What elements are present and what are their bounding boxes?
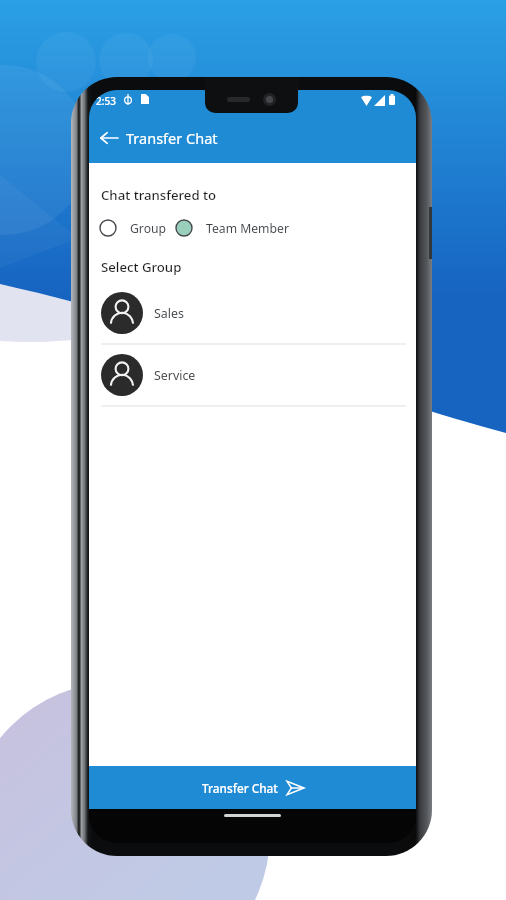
staticText: Team Member — [206, 220, 289, 237]
staticText: Transfer Chat — [202, 780, 278, 796]
staticText: Sales — [154, 305, 184, 322]
staticText: 2:53 — [96, 94, 116, 108]
button[interactable]: Team Member — [174, 217, 290, 239]
staticText: Transfer Chat — [126, 128, 218, 148]
staticText: Select Group — [101, 258, 182, 276]
staticText: Group — [130, 220, 167, 237]
button[interactable]: Sales — [89, 291, 416, 335]
staticText: Chat transfered to — [101, 186, 217, 204]
button[interactable]: Back — [93, 122, 125, 154]
staticText: Service — [154, 367, 196, 384]
button[interactable]: Transfer Chat — [89, 766, 416, 809]
button[interactable]: Group — [98, 217, 168, 239]
button[interactable]: Service — [89, 353, 416, 397]
